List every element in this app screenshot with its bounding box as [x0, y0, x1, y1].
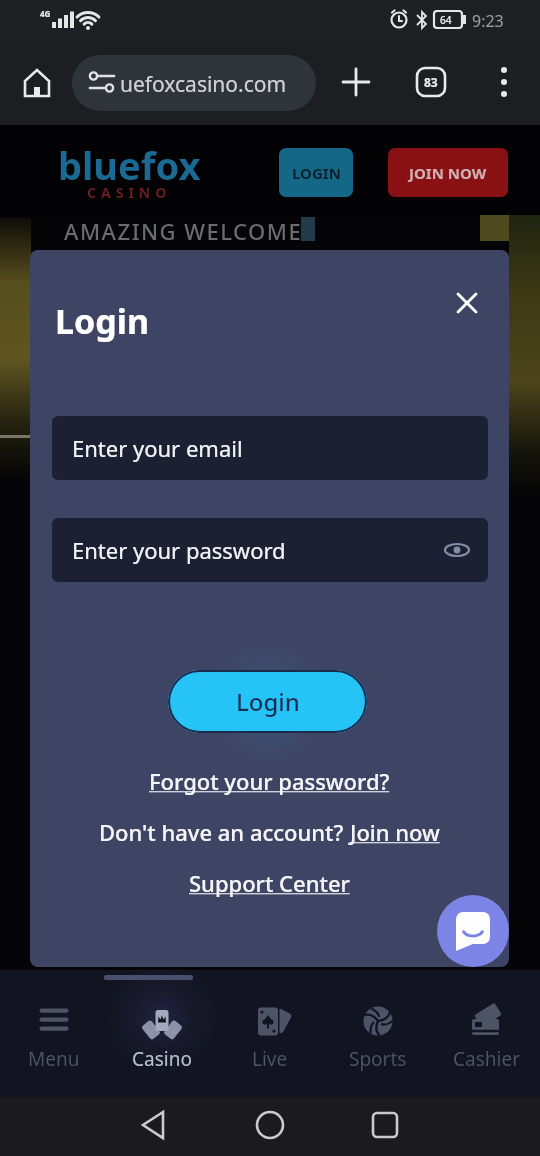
staticText: bluefox	[58, 139, 201, 191]
staticText: Enter your email	[72, 433, 243, 463]
staticText: AMAZING WELCOME	[64, 216, 303, 246]
button[interactable]: LOGIN	[279, 148, 353, 197]
button[interactable]: Live	[220, 988, 320, 1068]
button[interactable]	[336, 62, 376, 102]
staticText: JOIN NOW	[409, 163, 487, 183]
button[interactable]	[449, 285, 485, 321]
button[interactable]: Join now	[350, 817, 440, 847]
staticText: Menu	[28, 1046, 80, 1072]
button[interactable]	[437, 895, 509, 967]
button[interactable]: Forgot your password?	[149, 766, 390, 796]
button[interactable]: Enter your password	[52, 518, 488, 582]
button[interactable]	[128, 1105, 188, 1147]
button[interactable]: uefoxcasino.com	[72, 55, 316, 111]
button[interactable]: JOIN NOW	[388, 148, 508, 197]
staticText: uefoxcasino.com	[120, 70, 287, 99]
staticText: LOGIN	[292, 163, 341, 183]
staticText: 9:23	[472, 10, 504, 32]
staticText: 83	[424, 74, 438, 90]
button[interactable]	[488, 62, 520, 94]
staticText: Login	[55, 298, 150, 344]
staticText: Live	[252, 1046, 288, 1072]
staticText: Login	[236, 685, 300, 718]
staticText: Enter your password	[72, 535, 286, 565]
staticText: Cashier	[453, 1046, 520, 1072]
button[interactable]	[240, 1105, 300, 1147]
staticText: Don't have an account?	[99, 817, 350, 847]
button[interactable]	[16, 62, 58, 104]
staticText: Casino	[132, 1046, 192, 1072]
staticText: 64	[440, 13, 452, 27]
button[interactable]	[355, 1105, 415, 1147]
button[interactable]: Sports	[328, 988, 428, 1068]
button[interactable]: Cashier	[436, 988, 536, 1068]
button[interactable]: Casino	[112, 988, 212, 1068]
staticText: Sports	[349, 1046, 407, 1072]
staticText: CASINO	[87, 183, 172, 202]
button[interactable]: Support Center	[189, 868, 350, 898]
button[interactable]: Menu	[4, 988, 104, 1068]
staticText: 4G	[40, 8, 51, 19]
button[interactable]: Login	[168, 670, 367, 733]
button[interactable]: Enter your email	[52, 416, 488, 480]
button[interactable]: 83	[416, 67, 446, 97]
